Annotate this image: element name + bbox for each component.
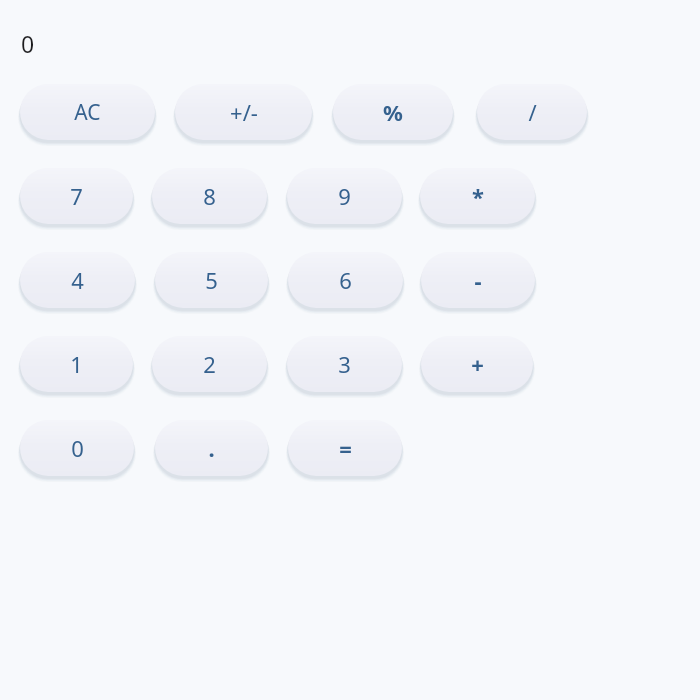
staticText: =: [339, 433, 352, 463]
staticText: 4: [71, 265, 84, 295]
button[interactable]: +/-: [175, 84, 312, 140]
button[interactable]: *: [420, 168, 535, 224]
button[interactable]: -: [421, 252, 535, 308]
staticText: 0: [71, 433, 84, 463]
button[interactable]: 6: [288, 252, 403, 308]
staticText: *: [472, 181, 484, 211]
button[interactable]: 3: [287, 336, 402, 392]
button[interactable]: 2: [152, 336, 267, 392]
staticText: 8: [203, 181, 216, 211]
button[interactable]: +: [421, 336, 533, 392]
button[interactable]: 7: [20, 168, 133, 224]
staticText: -: [474, 265, 482, 295]
staticText: +: [471, 349, 484, 379]
button[interactable]: AC: [20, 84, 155, 140]
staticText: AC: [74, 98, 101, 127]
button[interactable]: %: [333, 84, 453, 140]
staticText: 0: [21, 28, 35, 59]
staticText: /: [528, 97, 537, 127]
staticText: 6: [339, 265, 352, 295]
button[interactable]: /: [477, 84, 587, 140]
button[interactable]: 8: [152, 168, 267, 224]
staticText: 3: [338, 349, 351, 379]
button[interactable]: 1: [20, 336, 133, 392]
staticText: 7: [70, 181, 83, 211]
button[interactable]: .: [155, 420, 268, 476]
button[interactable]: 5: [155, 252, 268, 308]
staticText: 2: [203, 349, 216, 379]
button[interactable]: 0: [20, 420, 134, 476]
staticText: 5: [205, 265, 218, 295]
button[interactable]: =: [288, 420, 402, 476]
staticText: +/-: [230, 97, 258, 127]
staticText: 9: [338, 181, 351, 211]
staticText: %: [383, 97, 403, 127]
button[interactable]: 9: [287, 168, 402, 224]
button[interactable]: 4: [20, 252, 135, 308]
staticText: .: [208, 433, 215, 463]
staticText: 1: [70, 349, 83, 379]
